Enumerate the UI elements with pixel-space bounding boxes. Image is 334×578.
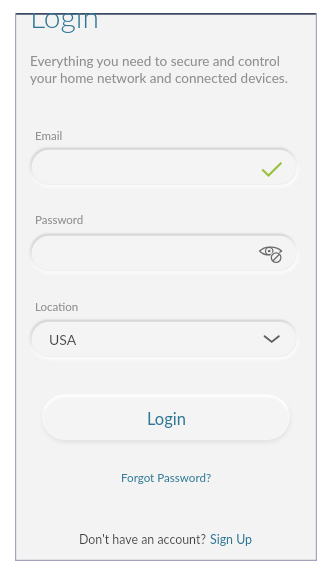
staticText: Email bbox=[35, 129, 63, 143]
button[interactable]: USA bbox=[32, 322, 296, 356]
staticText: Login bbox=[30, 13, 99, 34]
staticText: USA bbox=[49, 331, 77, 348]
button[interactable]: Sign Up bbox=[210, 532, 253, 547]
staticText: Login bbox=[147, 409, 186, 429]
other: Expand bbox=[262, 331, 282, 347]
button[interactable]: Show password bbox=[259, 242, 285, 264]
button[interactable]: Forgot Password? bbox=[117, 469, 216, 487]
button[interactable]: Show password bbox=[32, 236, 296, 270]
staticText: Location bbox=[35, 300, 79, 314]
staticText: Don't have an account? bbox=[79, 532, 210, 547]
other: Valid bbox=[260, 159, 284, 179]
staticText: Password bbox=[35, 213, 84, 227]
staticText: Everything you need to secure and contro… bbox=[30, 53, 294, 86]
button[interactable]: Valid bbox=[32, 150, 296, 184]
button[interactable]: Login bbox=[42, 394, 290, 440]
